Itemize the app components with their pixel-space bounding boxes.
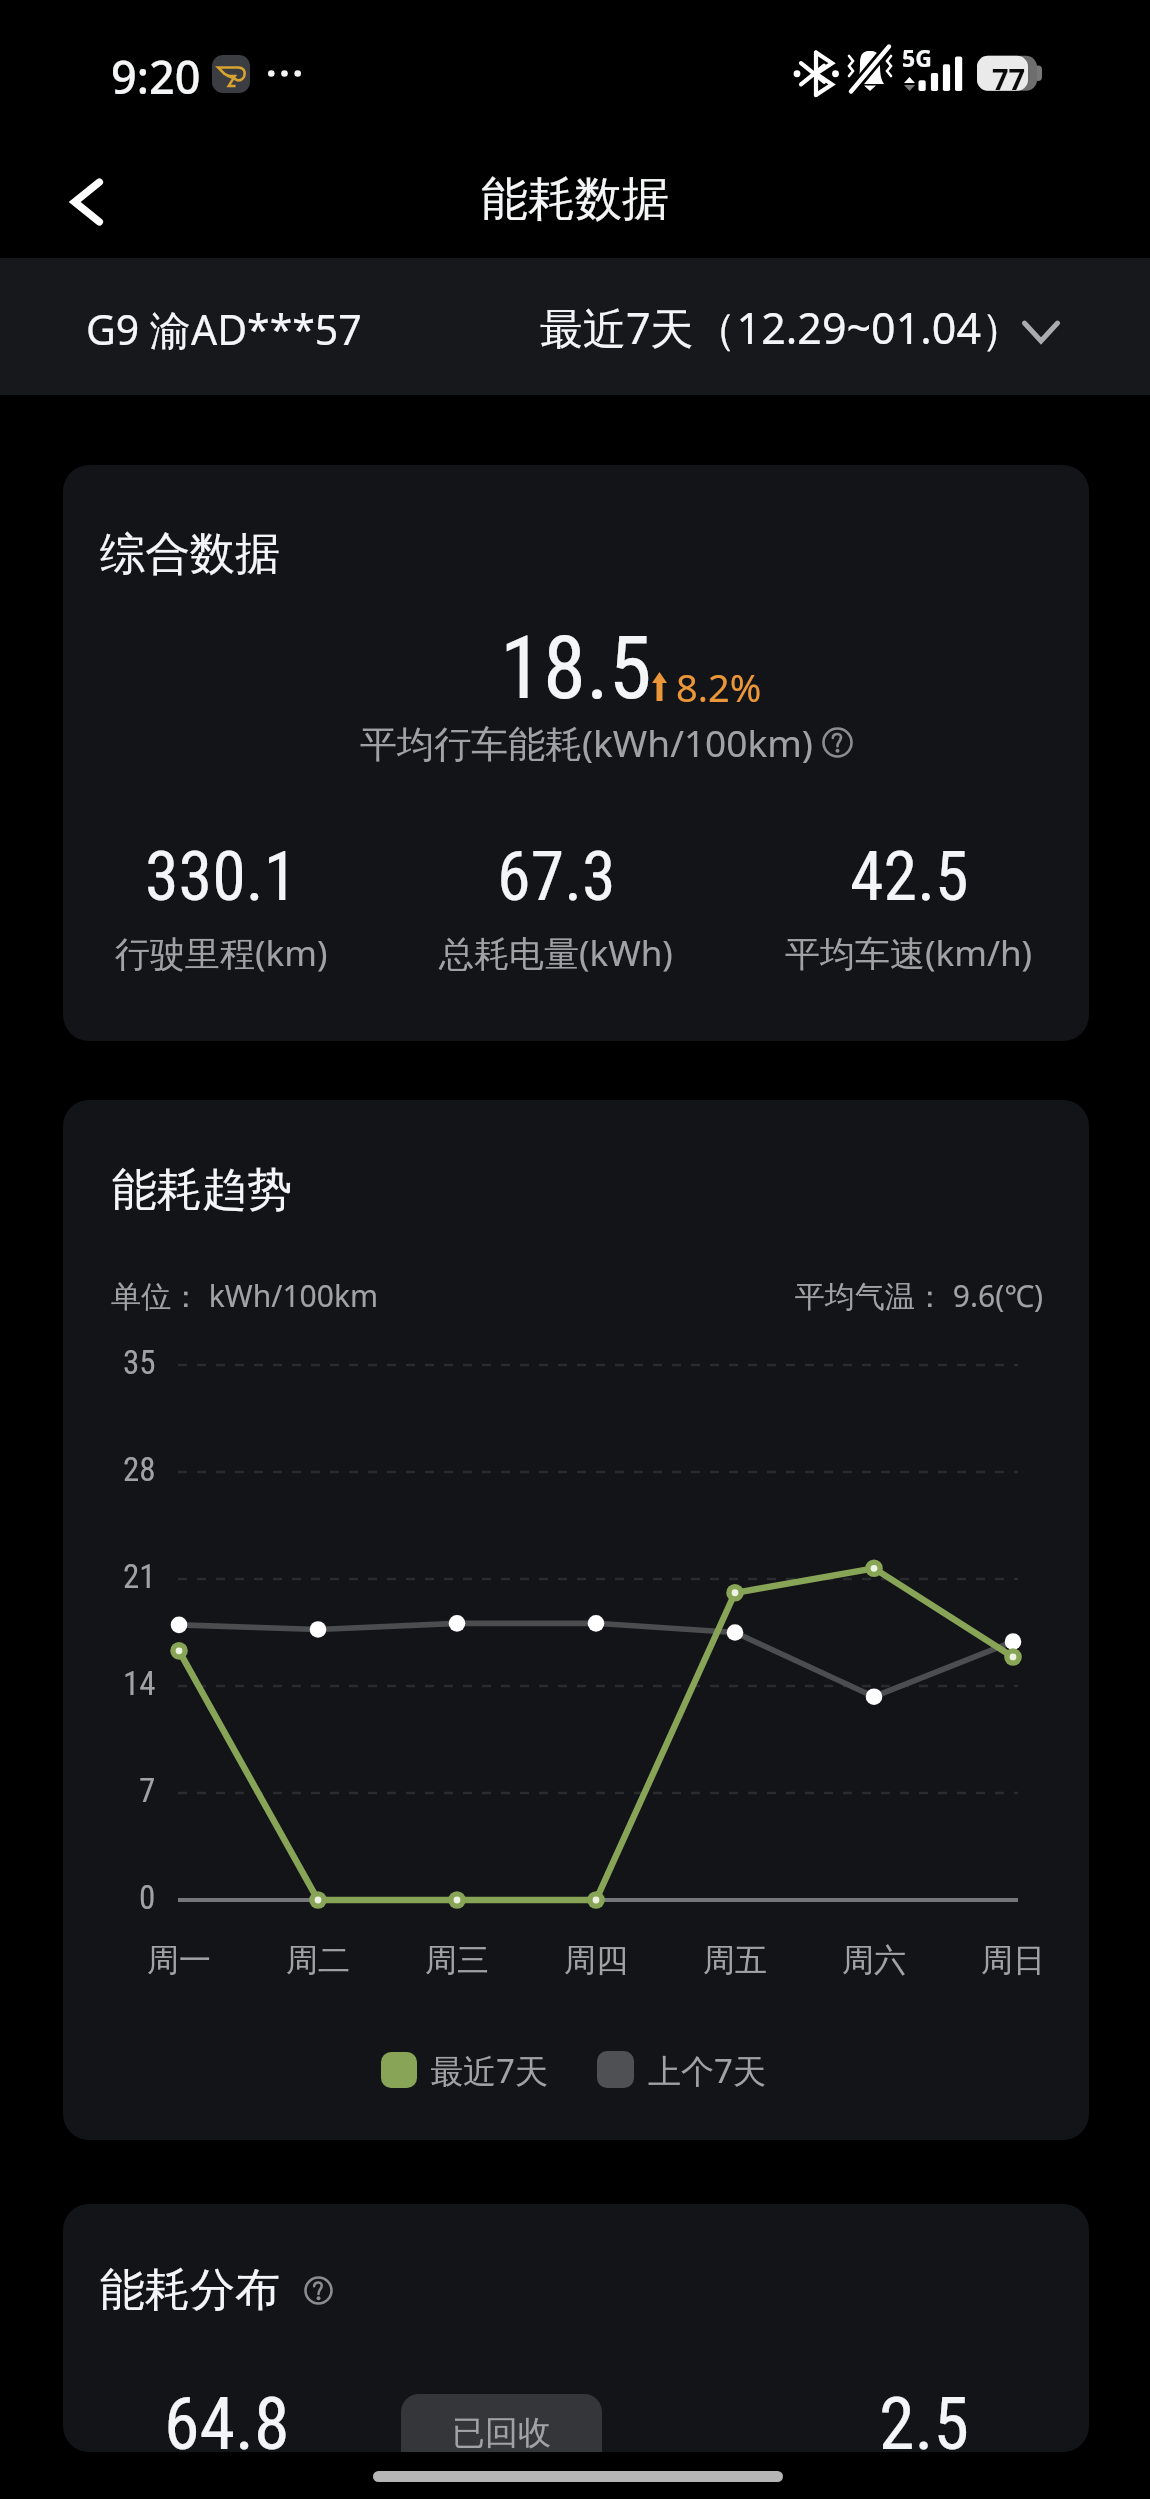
staticText: 单位： kWh/100km [111, 1275, 378, 1316]
button[interactable]: Back [50, 165, 124, 239]
staticText: 8.2% [676, 661, 762, 713]
staticText: 35 [123, 1343, 156, 1382]
staticText: 67.3 [497, 837, 616, 917]
staticText: 最近7天 [430, 2048, 548, 2093]
staticText: 2.5 [879, 2382, 970, 2452]
staticText: 周四 [564, 1940, 628, 1980]
staticText: 7 [139, 1771, 156, 1810]
staticText: 能耗趋势 [112, 1162, 292, 1219]
button[interactable]: 已回收 [401, 2394, 602, 2452]
staticText: 上个7天 [648, 2048, 766, 2093]
staticText: 5G [902, 42, 932, 73]
staticText: 18.5 [500, 617, 652, 719]
staticText: 周二 [286, 1940, 350, 1980]
staticText: 已回收 [452, 2412, 551, 2452]
staticText: 周日 [981, 1940, 1045, 1980]
staticText: 9:20 [111, 46, 201, 107]
staticText: 42.5 [850, 837, 969, 917]
button[interactable]: 最近7天（12.29~01.04） [540, 298, 1061, 357]
staticText: 综合数据 [100, 526, 280, 583]
staticText: 总耗电量(kWh) [439, 929, 673, 977]
staticText: 330.1 [145, 837, 298, 917]
staticText: 14 [123, 1664, 156, 1703]
staticText: G9 渝AD***57 [86, 301, 362, 357]
staticText: 平均气温： 9.6(℃) [795, 1275, 1044, 1316]
staticText: 周五 [703, 1940, 767, 1980]
staticText: 平均车速(km/h) [785, 929, 1033, 977]
staticText: 28 [123, 1450, 156, 1489]
staticText: 行驶里程(km) [115, 929, 328, 977]
staticText: 0 [139, 1878, 156, 1917]
staticText: 周一 [147, 1940, 211, 1980]
button[interactable]: App badge [212, 55, 250, 93]
staticText: 64.8 [164, 2382, 290, 2452]
staticText: 周六 [842, 1940, 906, 1980]
staticText: 21 [123, 1557, 156, 1596]
button[interactable]: Bluetooth [794, 45, 846, 95]
staticText: 能耗数据 [481, 170, 669, 229]
staticText: 77 [992, 59, 1026, 98]
staticText: 平均行车能耗(kWh/100km) [360, 717, 813, 768]
staticText: 能耗分布 [100, 2262, 280, 2319]
staticText: 周三 [425, 1940, 489, 1980]
button[interactable]: Silent mode [845, 45, 897, 95]
staticText: 最近7天（12.29~01.04） [540, 298, 1025, 357]
